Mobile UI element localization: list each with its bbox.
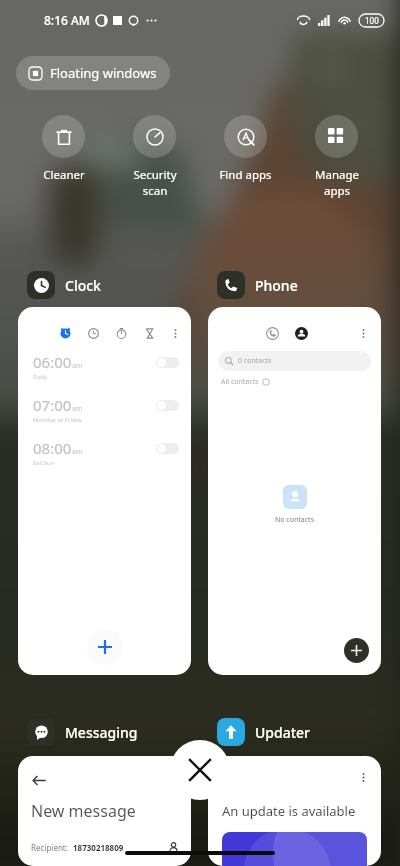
staticText: 8:16 AM (44, 12, 90, 28)
button[interactable]: 06:00 (33, 352, 179, 384)
button[interactable]: 08:00 (33, 438, 179, 470)
staticText: 08:00 (33, 438, 72, 458)
button[interactable]: Alarm toggle (156, 400, 179, 411)
button[interactable]: New message (18, 756, 191, 866)
staticText: Phone (255, 276, 298, 295)
staticText: 0 contacts (238, 356, 272, 366)
staticText: 18730218809 (73, 842, 124, 853)
button[interactable]: Manage apps (291, 115, 382, 198)
button[interactable]: 06:00 (18, 307, 191, 675)
button[interactable]: Cleaner (18, 115, 109, 183)
staticText: am (72, 404, 83, 414)
button[interactable]: Add contact (344, 638, 369, 663)
staticText: An update is available (222, 802, 356, 820)
staticText: Find apps (219, 167, 272, 183)
staticText: am (72, 361, 83, 371)
staticText: Clock (65, 276, 101, 295)
button[interactable]: Alarm toggle (156, 357, 179, 368)
staticText: 06:00 (33, 352, 72, 372)
button[interactable]: Updater (208, 718, 311, 746)
button[interactable]: 07:00 (33, 395, 179, 427)
staticText: Manage apps (315, 167, 359, 198)
button[interactable]: 0 contacts (218, 351, 371, 371)
button[interactable]: An update is available (208, 756, 381, 866)
staticText: Daily (33, 373, 47, 381)
button[interactable]: Close (170, 740, 230, 800)
button[interactable]: Floating windows (16, 56, 170, 90)
button[interactable]: Messaging (18, 718, 138, 746)
staticText: Cleaner (43, 167, 85, 183)
staticText: Messaging (65, 723, 138, 742)
button[interactable]: All contacts (221, 377, 269, 387)
button[interactable]: Phone (208, 271, 298, 299)
staticText: No contacts (275, 515, 314, 525)
staticText: Security scan (133, 167, 177, 198)
staticText: Recipient: (31, 842, 68, 853)
button[interactable]: Security scan (109, 115, 200, 198)
staticText: 100 (365, 15, 379, 26)
button[interactable]: Add alarm (87, 629, 123, 665)
staticText: Updater (255, 723, 311, 742)
button[interactable]: Clock (18, 271, 101, 299)
staticText: 07:00 (33, 395, 72, 415)
staticText: New message (31, 800, 136, 822)
button[interactable]: 0 contacts (208, 307, 381, 675)
staticText: All contacts (221, 377, 259, 387)
staticText: Floating windows (50, 64, 157, 82)
staticText: Sat Sun (33, 459, 55, 467)
button[interactable]: Alarm toggle (156, 443, 179, 454)
staticText: Monday to Friday (33, 416, 83, 424)
button[interactable]: Find apps (200, 115, 291, 183)
staticText: am (72, 447, 83, 457)
